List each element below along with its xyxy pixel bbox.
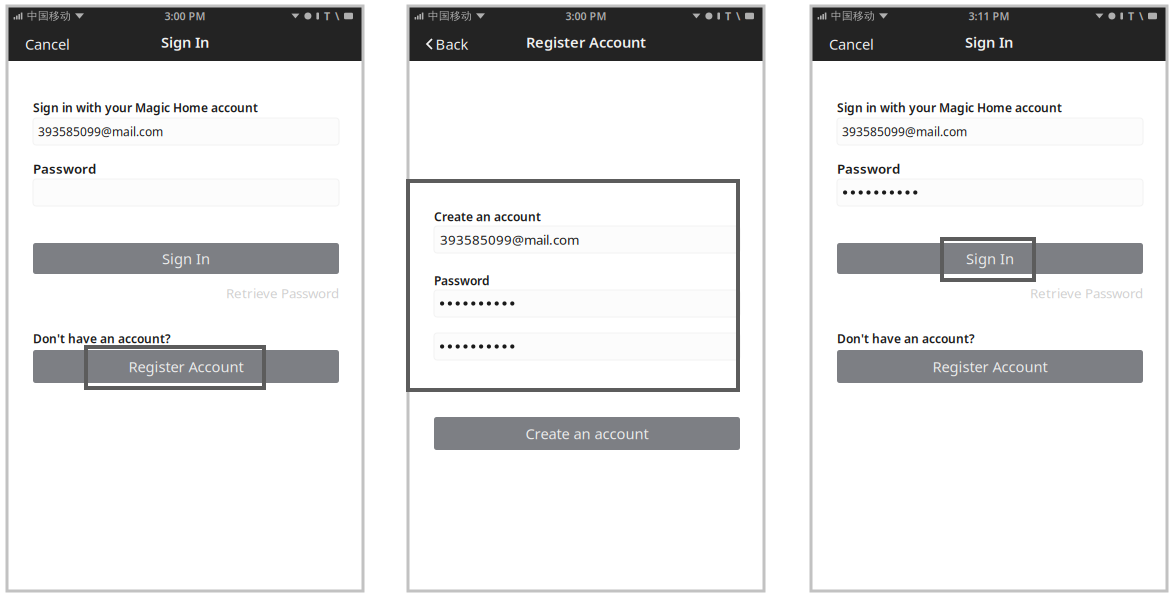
staticText: 393585099@mail.com: [440, 231, 579, 248]
staticText: Don't have an account?: [33, 330, 171, 346]
staticText: Don't have an account?: [837, 330, 975, 346]
staticText: Register Account: [526, 32, 646, 52]
button[interactable]: Cancel: [17, 31, 78, 57]
staticText: Sign In: [162, 249, 210, 268]
staticText: Sign in with your Magic Home account: [33, 99, 258, 115]
staticText: 中国移动: [27, 9, 71, 22]
staticText: Password: [33, 160, 96, 177]
staticText: Sign In: [966, 249, 1014, 268]
staticText: Password: [837, 160, 900, 177]
staticText: Sign In: [161, 32, 209, 52]
staticText: \: [1139, 9, 1143, 23]
button[interactable]: Retrieve Password: [33, 286, 339, 300]
staticText: T: [324, 9, 330, 23]
staticText: Cancel: [25, 34, 70, 54]
staticText: 3:00 PM: [164, 9, 205, 23]
staticText: 中国移动: [428, 9, 472, 22]
staticText: \: [335, 9, 339, 23]
button[interactable]: Register Account: [837, 350, 1143, 383]
staticText: Register Account: [128, 357, 243, 376]
button[interactable]: Sign In: [33, 243, 339, 274]
button[interactable]: Create an account: [434, 417, 740, 450]
button[interactable]: Register Account: [33, 350, 339, 383]
staticText: Back: [435, 34, 468, 54]
staticText: Retrieve Password: [226, 284, 339, 302]
button[interactable]: Cancel: [821, 31, 882, 57]
staticText: T: [1128, 9, 1134, 23]
staticText: Password: [434, 272, 490, 288]
staticText: 3:11 PM: [968, 9, 1009, 23]
staticText: Sign In: [965, 32, 1013, 52]
button[interactable]: Retrieve Password: [837, 286, 1143, 300]
button[interactable]: Sign In: [837, 243, 1143, 274]
staticText: 393585099@mail.com: [842, 123, 967, 139]
staticText: Create an account: [525, 424, 648, 443]
staticText: T: [725, 9, 731, 23]
staticText: 393585099@mail.com: [38, 123, 163, 139]
staticText: 中国移动: [831, 9, 875, 22]
staticText: Retrieve Password: [1030, 284, 1143, 302]
staticText: \: [736, 9, 740, 23]
staticText: Sign in with your Magic Home account: [837, 99, 1062, 115]
staticText: Create an account: [434, 208, 541, 224]
staticText: Cancel: [829, 34, 874, 54]
staticText: Register Account: [932, 357, 1047, 376]
button[interactable]: Back: [418, 31, 476, 57]
staticText: 3:00 PM: [565, 9, 606, 23]
